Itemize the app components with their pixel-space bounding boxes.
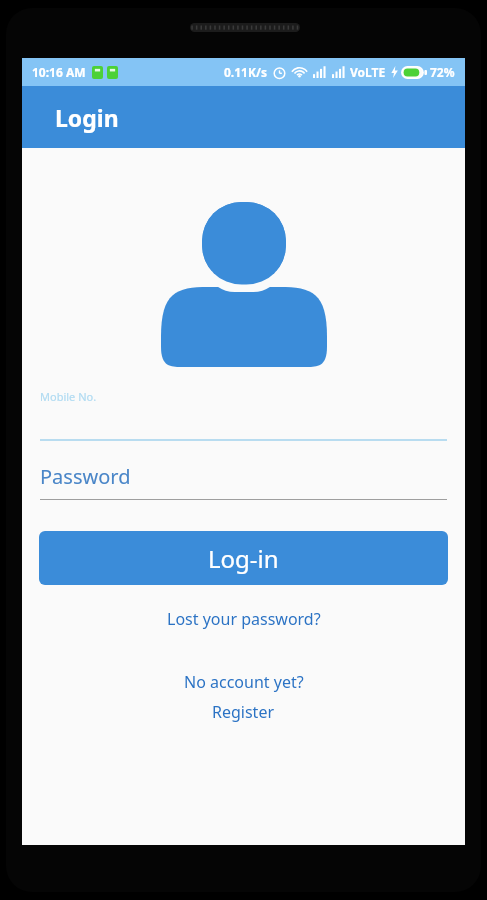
staticText: 72%: [430, 64, 455, 80]
staticText: Log-in: [208, 542, 279, 575]
button[interactable]: Password: [22, 463, 465, 500]
staticText: Password: [40, 463, 131, 490]
button[interactable]: Log-in: [39, 531, 448, 585]
button[interactable]: No account yet?: [22, 671, 465, 723]
staticText: Lost your password?: [167, 608, 321, 630]
staticText: 10:16 AM: [32, 64, 86, 80]
staticText: 0.11K/s: [224, 64, 267, 80]
staticText: No account yet?: [184, 671, 304, 693]
staticText: VoLTE: [350, 64, 386, 80]
staticText: Login: [55, 102, 119, 133]
button[interactable]: Mobile No.: [22, 389, 465, 441]
staticText: Mobile No.: [40, 389, 97, 404]
button[interactable]: Lost your password?: [22, 603, 465, 635]
staticText: Register: [212, 701, 275, 723]
